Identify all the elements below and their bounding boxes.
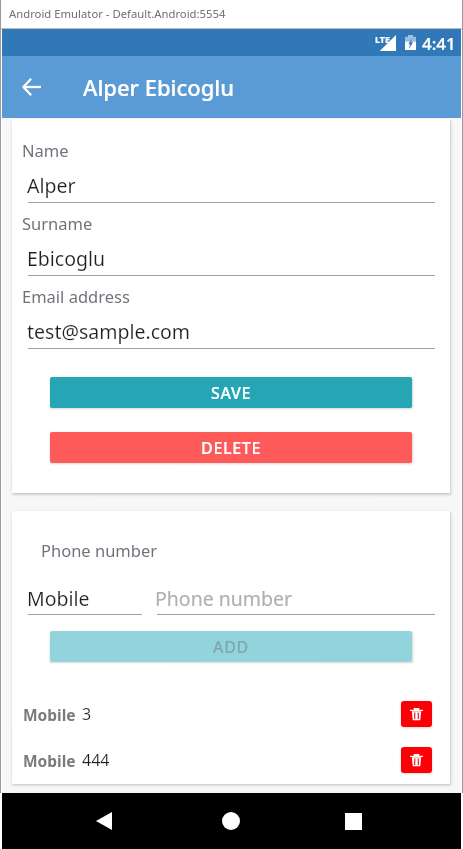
button[interactable]: SAVE <box>50 377 412 408</box>
button[interactable]: Back <box>8 56 55 118</box>
staticText: Mobile <box>27 585 90 612</box>
staticText: Email address <box>22 285 130 307</box>
staticText: SAVE <box>211 382 252 404</box>
staticText: Alper Ebicoglu <box>83 72 235 102</box>
staticText: test@sample.com <box>27 318 191 345</box>
button[interactable]: Recent apps <box>325 793 381 849</box>
staticText: DELETE <box>201 437 262 459</box>
button[interactable]: Mobile <box>23 741 432 779</box>
button[interactable]: Delete phone number <box>401 747 432 773</box>
staticText: Ebicoglu <box>27 245 106 272</box>
button[interactable]: Delete phone number <box>401 701 432 727</box>
staticText: ADD <box>213 636 249 658</box>
staticText: Android Emulator - Default.Android:5554 <box>9 6 226 21</box>
staticText: Alper <box>27 172 76 199</box>
staticText: Name <box>22 139 69 161</box>
staticText: 3 <box>82 703 92 725</box>
button[interactable]: Mobile <box>23 695 432 733</box>
staticText: 4:41 <box>422 32 456 55</box>
button[interactable]: Back <box>76 793 132 849</box>
button[interactable]: Home <box>203 793 259 849</box>
button[interactable]: ADD <box>50 631 412 662</box>
staticText: Surname <box>22 212 93 234</box>
staticText: Phone number <box>155 585 293 612</box>
staticText: 444 <box>82 749 110 771</box>
staticText: Mobile <box>23 704 76 725</box>
staticText: LTE <box>375 33 391 45</box>
staticText: Mobile <box>23 750 76 771</box>
button[interactable]: DELETE <box>50 432 412 463</box>
staticText: Phone number <box>41 539 158 561</box>
